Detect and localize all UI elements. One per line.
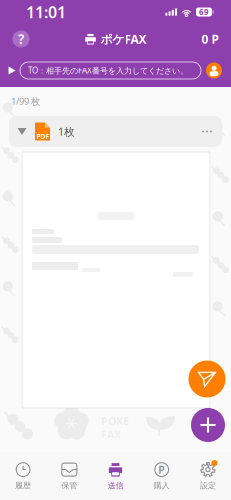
staticText: ? [18, 30, 24, 48]
staticText: FAX [101, 427, 121, 441]
staticText: 履歴 [15, 481, 31, 490]
staticText: 1/99 枚 [11, 95, 40, 107]
button[interactable]: 保管 [46, 452, 92, 500]
staticText: ポケFAX [100, 31, 146, 47]
staticText: 送信 [107, 481, 123, 490]
button[interactable]: Contacts [201, 57, 227, 83]
button[interactable]: More options [192, 116, 222, 147]
button[interactable]: 送信 [92, 452, 139, 500]
button[interactable]: Send [4, 60, 20, 80]
button[interactable]: 0 P [195, 24, 225, 54]
button[interactable]: Add [187, 404, 229, 446]
staticText: P [158, 462, 165, 477]
button[interactable]: Help [6, 24, 36, 54]
staticText: POKE [101, 414, 129, 428]
button[interactable]: 設定 [185, 452, 231, 500]
button[interactable]: Collapse [9, 116, 35, 147]
staticText: 購入 [154, 481, 170, 490]
staticText: PDF [36, 132, 49, 141]
staticText: 11:01 [26, 1, 66, 23]
button[interactable]: P [139, 452, 185, 500]
staticText: 1枚 [58, 124, 75, 139]
button[interactable]: 履歴 [0, 452, 46, 500]
button[interactable]: Send fax [185, 357, 229, 401]
staticText: 69 [199, 7, 209, 17]
staticText: 0 P [201, 31, 218, 47]
staticText: 設定 [200, 481, 216, 490]
staticText: 保管 [61, 481, 77, 490]
staticText: TO：相手先のFAX番号を入力してください。 [28, 65, 188, 76]
button[interactable]: TO：相手先のFAX番号を入力してください。 [20, 62, 201, 79]
